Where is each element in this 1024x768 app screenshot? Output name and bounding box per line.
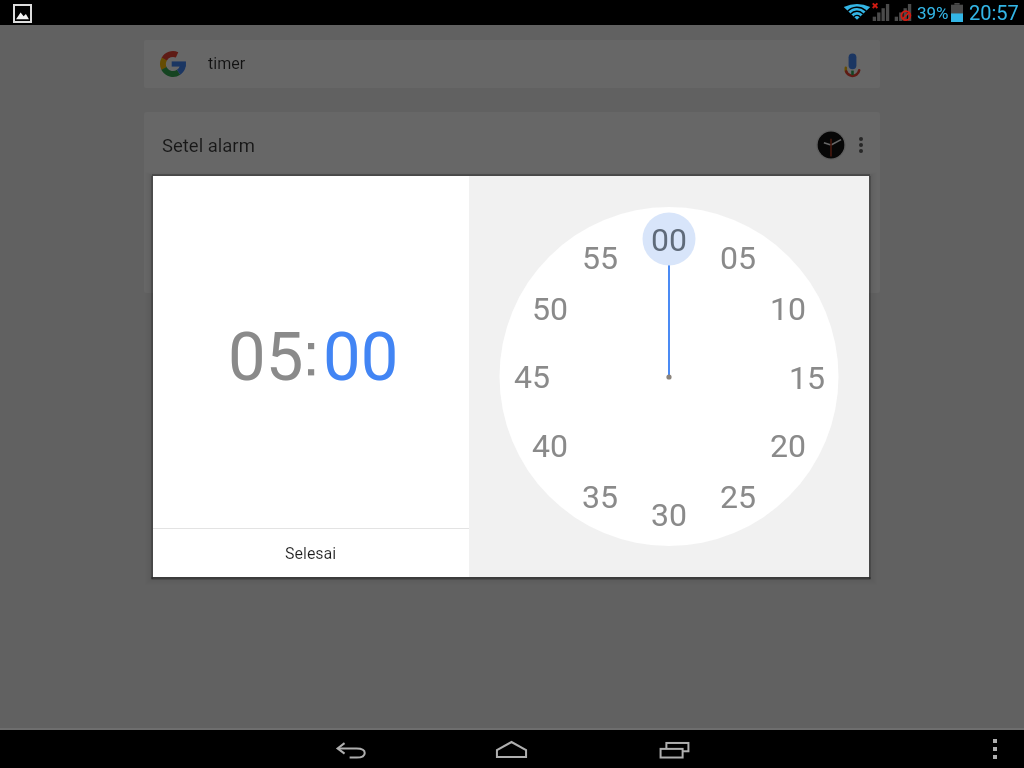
button[interactable]: Back <box>321 730 379 768</box>
staticText: 20:57 <box>969 1 1019 24</box>
button[interactable]: 20 <box>763 427 813 463</box>
staticText: 55 <box>582 239 618 275</box>
staticText: Setel alarm <box>162 135 255 157</box>
staticText: Selesai <box>285 544 337 563</box>
button[interactable]: 40 <box>525 427 575 463</box>
other: Voice search <box>844 53 861 75</box>
button[interactable]: Recents <box>645 730 703 768</box>
button[interactable]: 00 <box>323 318 399 397</box>
staticText: 40 <box>532 427 568 463</box>
button[interactable]: 05 <box>228 318 304 397</box>
staticText: 15 <box>789 359 825 395</box>
staticText: 39% <box>917 3 949 23</box>
button[interactable]: 15 <box>782 359 832 395</box>
button[interactable]: 35 <box>575 478 625 514</box>
button[interactable]: 55 <box>575 239 625 275</box>
button[interactable]: More options <box>980 730 1010 768</box>
button[interactable]: 10 <box>763 290 813 326</box>
staticText: 20 <box>770 427 806 463</box>
button[interactable]: 00 <box>644 221 694 257</box>
button[interactable]: Selesai <box>153 529 469 577</box>
button[interactable]: 30 <box>644 496 694 532</box>
staticText: 10 <box>770 290 806 326</box>
staticText: 45 <box>514 358 550 394</box>
button[interactable]: More options <box>849 130 873 160</box>
staticText: 25 <box>720 478 756 514</box>
staticText: 00 <box>651 221 687 257</box>
staticText: 00 <box>323 318 399 397</box>
staticText: 50 <box>532 290 568 326</box>
button[interactable]: timer <box>144 40 880 88</box>
button[interactable]: 45 <box>507 358 557 394</box>
button[interactable]: 05 <box>713 239 763 275</box>
staticText: 35 <box>582 478 618 514</box>
button[interactable]: 50 <box>525 290 575 326</box>
button[interactable]: Home <box>482 730 540 768</box>
staticText: 30 <box>651 496 687 532</box>
staticText: 05 <box>228 318 304 397</box>
staticText: 05 <box>720 239 756 275</box>
button[interactable]: Clock app <box>816 130 846 160</box>
button[interactable]: 25 <box>713 478 763 514</box>
staticText: timer <box>208 54 246 73</box>
